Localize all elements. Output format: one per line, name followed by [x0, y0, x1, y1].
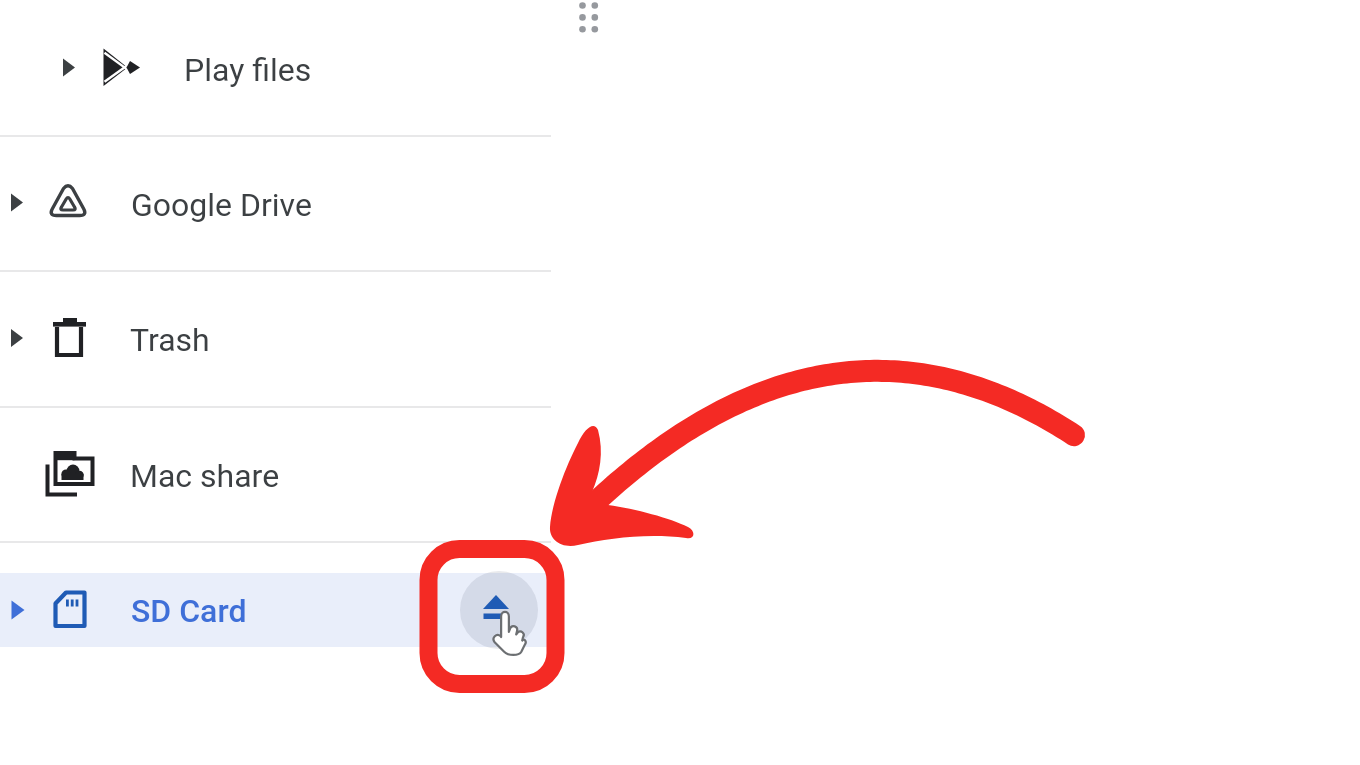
- staticText: SD Card: [131, 592, 247, 630]
- button[interactable]: Drag handle: [572, 0, 602, 40]
- staticText: Trash: [130, 321, 210, 359]
- button[interactable]: Trash: [0, 270, 551, 406]
- button[interactable]: Google Drive: [0, 135, 551, 270]
- button[interactable]: Play files: [0, 0, 551, 135]
- staticText: Google Drive: [131, 186, 312, 224]
- staticText: Play files: [184, 51, 312, 89]
- button[interactable]: Mac share: [0, 406, 551, 541]
- staticText: Mac share: [130, 457, 280, 495]
- button[interactable]: SD Card: [0, 573, 551, 647]
